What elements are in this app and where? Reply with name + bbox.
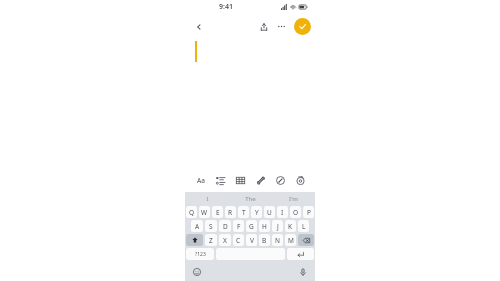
button[interactable]: Back bbox=[190, 18, 207, 35]
staticText: C bbox=[236, 236, 241, 245]
button[interactable]: B bbox=[259, 234, 270, 246]
staticText: T bbox=[242, 208, 246, 217]
button[interactable]: Draw bbox=[275, 175, 286, 186]
button[interactable]: More options bbox=[276, 21, 287, 32]
button[interactable]: T bbox=[238, 206, 249, 218]
staticText: S bbox=[209, 222, 213, 231]
button[interactable]: P bbox=[303, 206, 314, 218]
button[interactable]: Q bbox=[186, 206, 197, 218]
staticText: B bbox=[262, 236, 267, 245]
staticText: N bbox=[275, 236, 280, 245]
button[interactable]: Emoji bbox=[191, 266, 202, 277]
staticText: D bbox=[223, 222, 228, 231]
staticText: U bbox=[267, 208, 272, 217]
button[interactable]: X bbox=[219, 234, 231, 246]
button[interactable]: ?123 bbox=[186, 248, 214, 260]
button[interactable]: The bbox=[229, 192, 272, 205]
button[interactable]: Y bbox=[251, 206, 262, 218]
button[interactable]: I bbox=[185, 192, 229, 205]
button[interactable]: Voice input bbox=[297, 266, 308, 277]
staticText: G bbox=[249, 222, 254, 231]
button[interactable]: S bbox=[205, 220, 217, 232]
staticText: I bbox=[281, 208, 284, 217]
button[interactable]: Done bbox=[294, 18, 311, 35]
button[interactable]: E bbox=[212, 206, 223, 218]
staticText: I'm bbox=[289, 195, 298, 203]
staticText: Q bbox=[189, 208, 195, 217]
button[interactable]: G bbox=[246, 220, 257, 232]
button[interactable]: V bbox=[246, 234, 257, 246]
button[interactable]: U bbox=[264, 206, 275, 218]
button[interactable]: M bbox=[285, 234, 296, 246]
button[interactable]: Text format bbox=[195, 175, 206, 186]
button[interactable]: L bbox=[298, 220, 309, 232]
button[interactable]: Backspace bbox=[298, 234, 314, 246]
staticText: M bbox=[288, 236, 294, 245]
button[interactable]: Z bbox=[205, 234, 217, 246]
staticText: V bbox=[250, 236, 254, 245]
staticText: X bbox=[223, 236, 227, 245]
button[interactable]: J bbox=[272, 220, 283, 232]
staticText: Aa bbox=[197, 176, 205, 185]
staticText: J bbox=[277, 222, 279, 231]
staticText: K bbox=[288, 222, 293, 231]
staticText: 9:41 bbox=[219, 2, 233, 12]
staticText: E bbox=[216, 208, 220, 217]
button[interactable]: Table bbox=[235, 175, 246, 186]
button[interactable]: H bbox=[259, 220, 270, 232]
staticText: I bbox=[206, 195, 209, 203]
button[interactable]: D bbox=[219, 220, 231, 232]
button[interactable]: O bbox=[290, 206, 301, 218]
staticText: L bbox=[302, 222, 306, 231]
button[interactable]: K bbox=[285, 220, 296, 232]
button[interactable]: W bbox=[199, 206, 210, 218]
staticText: R bbox=[228, 208, 233, 217]
staticText: Z bbox=[209, 236, 213, 245]
button[interactable]: Enter bbox=[287, 248, 314, 260]
button[interactable]: Checklist bbox=[215, 175, 226, 186]
staticText: F bbox=[237, 222, 241, 231]
button[interactable]: C bbox=[233, 234, 244, 246]
button[interactable]: I'm bbox=[272, 192, 315, 205]
button[interactable]: Camera bbox=[295, 175, 306, 186]
button[interactable]: Attach bbox=[255, 175, 266, 186]
button[interactable]: I bbox=[277, 206, 288, 218]
button[interactable]: N bbox=[272, 234, 283, 246]
button[interactable]: Share bbox=[258, 21, 269, 32]
button[interactable]: Shift bbox=[186, 234, 203, 246]
staticText: P bbox=[307, 208, 311, 217]
staticText: ?123 bbox=[195, 251, 206, 258]
staticText: Y bbox=[255, 208, 259, 217]
staticText: H bbox=[262, 222, 267, 231]
staticText: O bbox=[293, 208, 299, 217]
button[interactable]: F bbox=[233, 220, 244, 232]
button[interactable]: A bbox=[191, 220, 203, 232]
staticText: The bbox=[245, 195, 256, 203]
button[interactable]: R bbox=[225, 206, 236, 218]
staticText: A bbox=[195, 222, 200, 231]
staticText: W bbox=[201, 208, 208, 217]
